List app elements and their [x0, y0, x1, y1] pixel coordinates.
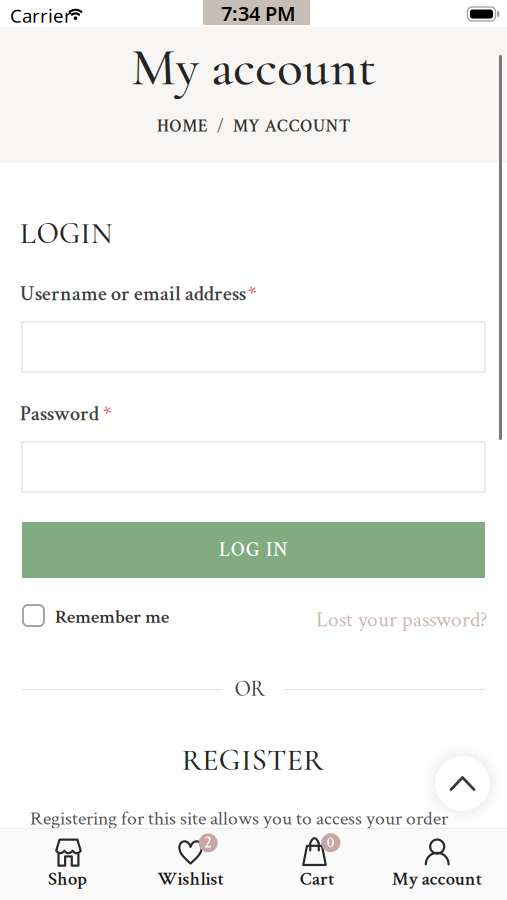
staticText: Password [20, 401, 99, 427]
staticText: 2 [204, 833, 212, 853]
staticText: Wishlist [157, 867, 223, 891]
staticText: MY ACCOUNT [233, 115, 350, 137]
staticText: Remember me [55, 604, 169, 629]
button[interactable]: My account [379, 829, 494, 899]
staticText: HOME [157, 115, 208, 137]
staticText: / [217, 115, 224, 137]
staticText: * [248, 281, 256, 308]
staticText: OR [234, 676, 265, 702]
staticText: Cart [300, 867, 334, 891]
staticText: Lost your password? [316, 606, 488, 634]
staticText: REGISTER [182, 742, 323, 778]
button[interactable]: LOG IN [22, 522, 485, 578]
button[interactable]: HOME [157, 115, 208, 137]
button[interactable]: Remember me [23, 606, 168, 628]
staticText: Registering for this site allows you to … [30, 806, 448, 831]
staticText: Username or email address [20, 281, 246, 307]
button[interactable]: Scroll to top [435, 756, 490, 811]
button[interactable]: Wishlist [133, 829, 248, 899]
staticText: 0 [327, 833, 335, 853]
staticText: My account [392, 867, 482, 891]
staticText: LOGIN [20, 216, 112, 251]
staticText: 7:34 PM [221, 0, 296, 27]
button[interactable]: Shop [10, 829, 125, 899]
staticText: My account [131, 35, 376, 100]
staticText: LOG IN [219, 537, 288, 563]
staticText: * [103, 401, 111, 428]
button[interactable]: Cart [259, 829, 374, 899]
staticText: Shop [48, 867, 87, 891]
staticText: Carrier [10, 3, 72, 28]
button[interactable]: Lost your password? [316, 606, 488, 634]
